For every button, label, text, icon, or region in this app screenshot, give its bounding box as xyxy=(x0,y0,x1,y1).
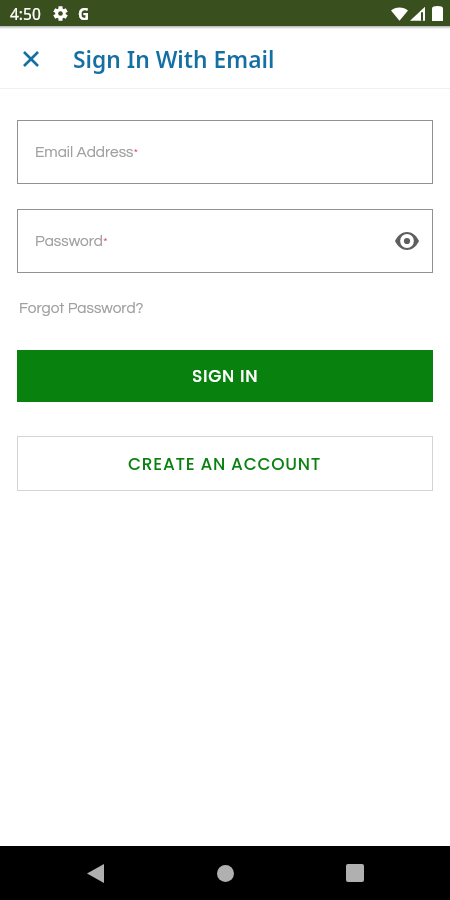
button[interactable]: Recent apps xyxy=(331,849,379,897)
button[interactable]: Password* xyxy=(17,209,433,273)
staticText: SIGN IN xyxy=(192,364,259,388)
button[interactable]: Show password xyxy=(391,225,423,257)
staticText: CREATE AN ACCOUNT xyxy=(128,452,322,476)
staticText: 4:50 xyxy=(10,3,41,24)
staticText: Password* xyxy=(35,233,108,249)
staticText: Email Address* xyxy=(35,144,139,160)
staticText: Sign In With Email xyxy=(73,44,275,75)
button[interactable]: SIGN IN xyxy=(17,350,433,402)
button[interactable]: CREATE AN ACCOUNT xyxy=(17,436,433,491)
button[interactable]: Home xyxy=(201,849,249,897)
button[interactable]: Email Address* xyxy=(17,120,433,184)
button[interactable]: Back xyxy=(71,849,119,897)
staticText: G xyxy=(78,3,90,24)
button[interactable]: Close xyxy=(0,29,61,88)
staticText: Forgot Password? xyxy=(19,300,144,316)
button[interactable]: Forgot Password? xyxy=(19,300,144,316)
